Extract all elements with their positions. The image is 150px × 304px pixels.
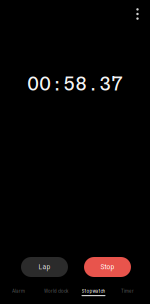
staticText: 00:58.37 [27,73,123,95]
staticText: Alarm [12,288,25,294]
staticText: Lap [38,263,50,271]
button[interactable]: Stopwatch [75,286,112,298]
button[interactable]: Alarm [0,286,37,298]
button[interactable]: World clock [37,286,75,298]
staticText: Timer [121,288,134,294]
button[interactable]: Stop [84,257,131,277]
staticText: Stopwatch [81,288,105,294]
staticText: World clock [44,288,68,294]
staticText: Stop [100,263,114,271]
button[interactable]: More options [125,0,150,28]
button[interactable]: Timer [112,286,143,298]
button[interactable]: Lap [21,257,68,277]
